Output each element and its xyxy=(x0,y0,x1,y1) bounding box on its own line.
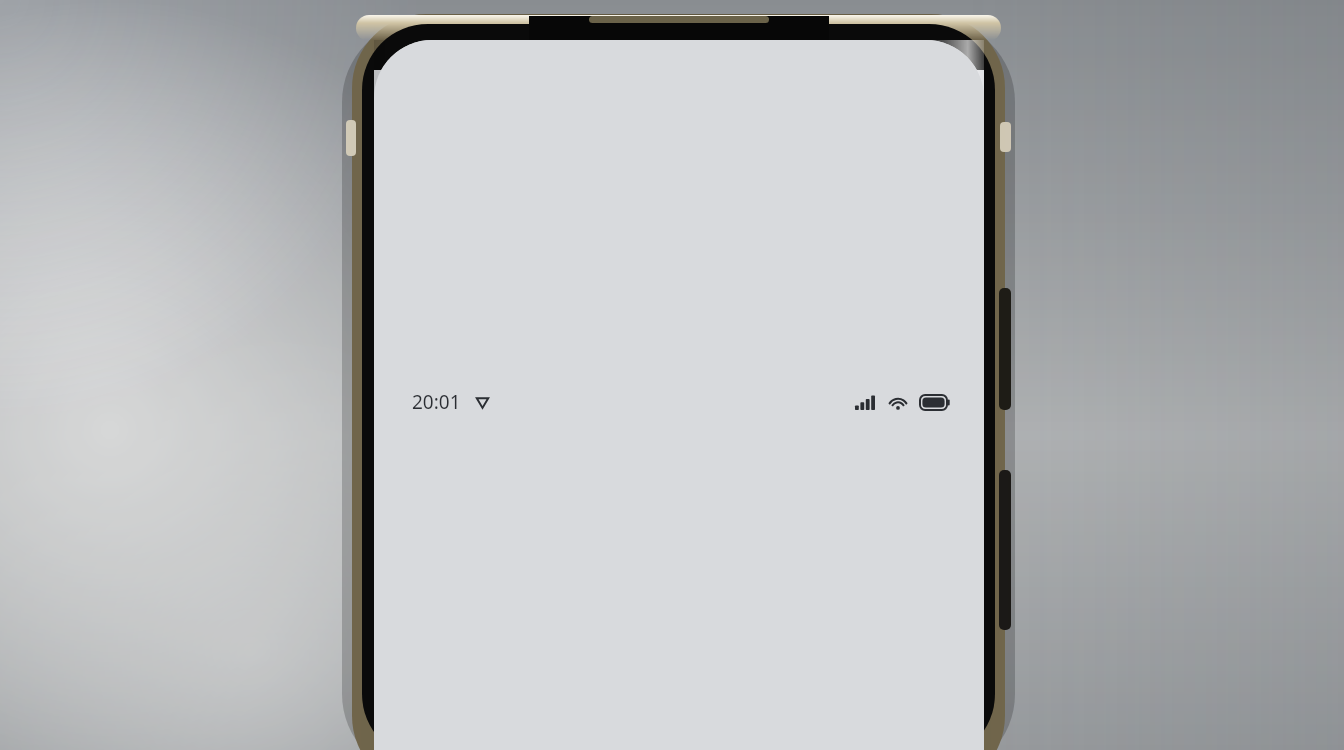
staticText: 20:01 xyxy=(412,389,461,415)
